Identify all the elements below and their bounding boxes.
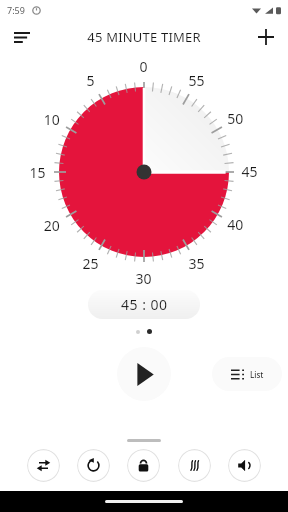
button[interactable]: 45 : 00 [88, 290, 200, 319]
button[interactable]: Repeat [27, 449, 60, 482]
staticText: 45 : 00 [121, 295, 168, 314]
button[interactable]: Menu [6, 21, 38, 53]
button[interactable]: Add timer [250, 21, 282, 53]
button[interactable]: Timer dial [0, 60, 288, 284]
button[interactable]: Sound [228, 449, 261, 482]
button[interactable]: Reset [77, 449, 110, 482]
button[interactable]: List [212, 357, 282, 391]
button[interactable]: Vibrate [178, 449, 211, 482]
button[interactable]: Lock [127, 449, 160, 482]
button[interactable]: Start [117, 347, 171, 401]
staticText: List [250, 369, 264, 380]
staticText: 45 MINUTE TIMER [87, 28, 201, 46]
staticText: 7:59 [7, 4, 25, 16]
